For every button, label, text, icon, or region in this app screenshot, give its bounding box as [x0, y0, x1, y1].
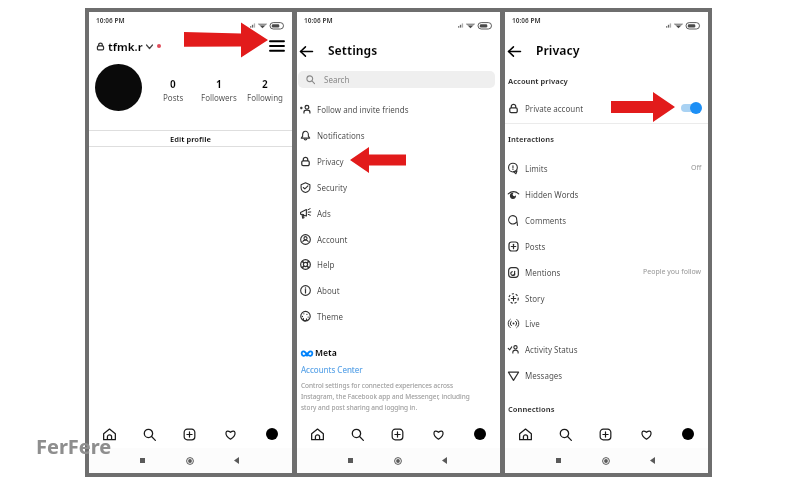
button[interactable]: Search: [545, 420, 585, 448]
staticText: Activity Status: [525, 344, 578, 355]
button[interactable]: Create: [377, 420, 418, 448]
button[interactable]: Edit profile: [89, 131, 292, 146]
button[interactable]: Security: [297, 175, 500, 199]
staticText: Off: [691, 163, 702, 173]
staticText: Notifications: [317, 130, 365, 141]
button[interactable]: Home: [297, 420, 337, 448]
button[interactable]: Ads: [297, 201, 500, 225]
staticText: Account privacy: [508, 76, 568, 86]
staticText: Control settings for connected experienc…: [301, 381, 483, 412]
staticText: Follow and invite friends: [317, 104, 409, 115]
staticText: Hidden Words: [525, 189, 579, 200]
button[interactable]: Live: [505, 311, 708, 335]
button[interactable]: Mentions: [505, 260, 708, 284]
staticText: 10:06 PM: [512, 16, 541, 25]
staticText: tfmk.r: [108, 39, 143, 54]
button[interactable]: Profile: [459, 420, 500, 448]
staticText: Account: [317, 234, 348, 245]
staticText: Settings: [328, 42, 378, 58]
staticText: Private account: [525, 103, 584, 114]
staticText: Story: [525, 293, 545, 304]
staticText: Messages: [525, 370, 563, 381]
staticText: Privacy: [317, 156, 344, 167]
button[interactable]: Privacy: [297, 149, 500, 173]
staticText: 10:06 PM: [304, 16, 333, 25]
button[interactable]: Activity: [210, 420, 251, 448]
button[interactable]: Hidden Words: [505, 182, 708, 206]
staticText: Live: [525, 318, 540, 329]
staticText: Edit profile: [170, 134, 211, 144]
button[interactable]: Help: [297, 252, 500, 276]
button[interactable]: Comments: [505, 208, 708, 232]
staticText: Posts: [525, 241, 546, 252]
staticText: Search: [324, 74, 350, 85]
button[interactable]: Posts: [505, 234, 708, 258]
button[interactable]: Home: [89, 420, 129, 448]
staticText: Limits: [525, 163, 548, 174]
staticText: Connections: [508, 404, 555, 414]
button[interactable]: Search: [298, 71, 495, 88]
staticText: About: [317, 285, 340, 296]
button[interactable]: Create: [169, 420, 210, 448]
staticText: FerFere: [36, 433, 112, 460]
staticText: Interactions: [508, 134, 554, 144]
button[interactable]: 0: [149, 74, 197, 106]
staticText: Mentions: [525, 267, 561, 278]
staticText: Following: [247, 92, 284, 103]
staticText: Ads: [317, 208, 331, 219]
button[interactable]: Story: [505, 286, 708, 310]
button[interactable]: 1: [195, 74, 243, 106]
button[interactable]: Follow and invite friends: [297, 97, 500, 121]
staticText: 2: [262, 77, 268, 91]
button[interactable]: Theme: [297, 304, 500, 328]
button[interactable]: Profile: [667, 420, 708, 448]
staticText: Help: [317, 259, 335, 270]
button[interactable]: Home: [505, 420, 545, 448]
button[interactable]: Account: [297, 227, 500, 251]
staticText: People you follow: [643, 267, 702, 277]
button[interactable]: 2: [241, 74, 289, 106]
button[interactable]: Messages: [505, 363, 708, 387]
button[interactable]: Create: [585, 420, 626, 448]
button[interactable]: Menu: [268, 37, 286, 55]
staticText: Meta: [315, 347, 337, 359]
staticText: Privacy: [536, 42, 580, 58]
button[interactable]: Back: [504, 41, 524, 61]
button[interactable]: Activity: [418, 420, 459, 448]
button[interactable]: Back: [296, 41, 316, 61]
staticText: 10:06 PM: [96, 16, 125, 25]
button[interactable]: Search: [337, 420, 377, 448]
button[interactable]: Profile: [251, 420, 292, 448]
staticText: Theme: [317, 311, 343, 322]
button[interactable]: Search: [129, 420, 169, 448]
staticText: 1: [216, 77, 222, 91]
button[interactable]: Accounts Center: [301, 364, 363, 375]
button[interactable]: Private account: [505, 96, 708, 120]
staticText: 0: [170, 77, 176, 91]
button[interactable]: Activity: [626, 420, 667, 448]
button[interactable]: Notifications: [297, 123, 500, 147]
staticText: Security: [317, 182, 348, 193]
staticText: Comments: [525, 215, 567, 226]
staticText: Followers: [201, 92, 237, 103]
button[interactable]: Activity Status: [505, 337, 708, 361]
button[interactable]: About: [297, 278, 500, 302]
staticText: Accounts Center: [301, 364, 363, 375]
button[interactable]: Limits: [505, 156, 708, 180]
staticText: Posts: [163, 92, 184, 103]
